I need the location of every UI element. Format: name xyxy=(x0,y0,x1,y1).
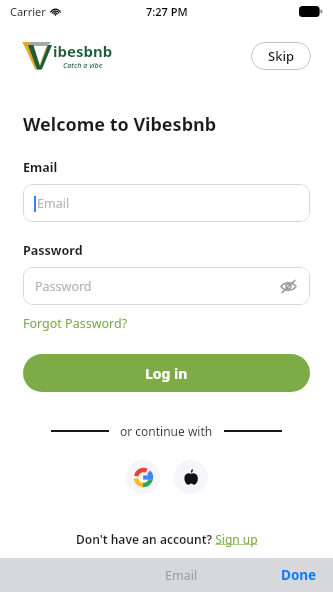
staticText: 7:27 PM xyxy=(146,4,188,19)
staticText: or continue with xyxy=(120,423,213,439)
staticText: Carrier xyxy=(10,4,46,19)
staticText: Log in xyxy=(145,364,188,383)
staticText: Don't have an account? Sign up xyxy=(76,531,258,547)
button[interactable]: Continue with Google xyxy=(126,460,160,494)
button[interactable]: Continue with Apple xyxy=(174,460,208,494)
button[interactable]: Show password xyxy=(276,274,300,298)
staticText: Welcome to Vibesbnb xyxy=(23,112,217,137)
button[interactable]: Log in xyxy=(23,354,310,392)
staticText: Catch a vibe xyxy=(63,61,103,71)
staticText: Email xyxy=(23,159,58,176)
staticText: ibesbnb xyxy=(53,41,113,61)
staticText: Skip xyxy=(268,47,294,65)
button[interactable]: Password xyxy=(23,267,310,305)
button[interactable]: Forgot Password? xyxy=(23,315,128,332)
staticText: Password xyxy=(35,278,92,295)
staticText: Email xyxy=(165,567,198,584)
button[interactable]: Done xyxy=(281,566,317,584)
button[interactable]: Skip xyxy=(251,42,311,70)
staticText: Password xyxy=(23,242,83,259)
staticText: Email xyxy=(37,195,70,212)
staticText: Forgot Password? xyxy=(23,315,128,332)
button[interactable]: Email xyxy=(23,184,310,222)
staticText: Done xyxy=(281,566,317,584)
button[interactable]: Don't have an account? Sign up xyxy=(0,531,333,547)
